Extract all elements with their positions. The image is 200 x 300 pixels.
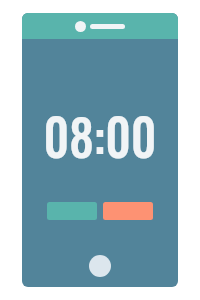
staticText: 08:00 <box>26 97 173 173</box>
button[interactable]: Stop <box>103 202 153 220</box>
button[interactable]: Home <box>89 255 111 277</box>
